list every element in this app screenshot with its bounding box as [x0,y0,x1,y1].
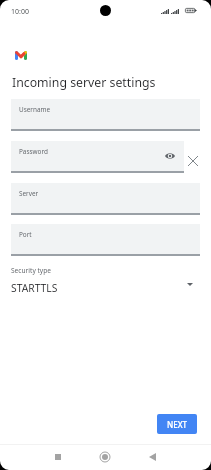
staticText: 10:00 [11,7,29,17]
staticText: Server [19,189,39,198]
button[interactable]: Show password [163,149,177,163]
button[interactable]: Home [95,447,115,467]
button[interactable]: Security type [0,263,211,297]
button[interactable]: Port [11,224,200,254]
staticText: Incoming server settings [12,74,156,91]
staticText: STARTTLS [11,281,58,295]
button[interactable]: Password [11,141,184,171]
button[interactable]: Server [11,183,200,213]
staticText: Security type [11,266,51,275]
button[interactable]: Recent apps [48,447,68,467]
staticText: Username [19,105,51,114]
button[interactable]: Clear [185,153,201,169]
button[interactable]: NEXT [157,414,197,434]
staticText: NEXT [167,419,188,430]
button[interactable]: Username [11,99,200,129]
staticText: Password [19,147,48,156]
staticText: Port [19,230,32,239]
button[interactable]: Back [142,447,162,467]
